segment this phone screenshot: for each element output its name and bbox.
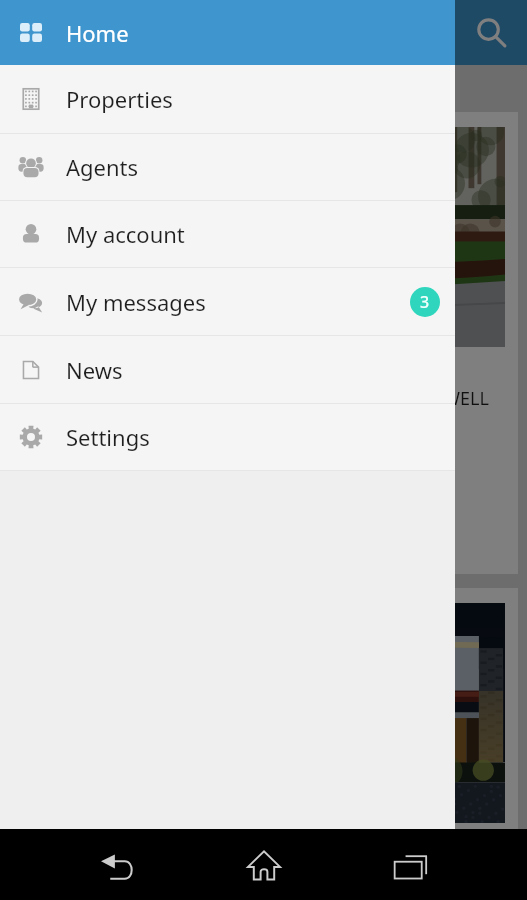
- staticText: My account: [66, 219, 185, 249]
- button[interactable]: LUXURY 5 BEDROOM DETACHED HOME IN SOUTHW…: [9, 112, 518, 574]
- button[interactable]: Back: [87, 837, 147, 897]
- button[interactable]: Recent apps: [380, 837, 440, 897]
- button[interactable]: Properties: [0, 65, 455, 133]
- button[interactable]: MODERN 4 BEDROOM VILLA WITH POOL, RIVERS…: [9, 588, 518, 900]
- button[interactable]: Search: [470, 11, 514, 55]
- button[interactable]: Home: [0, 0, 455, 65]
- staticText: LUXURY 5 BEDROOM DETACHED HOME IN SOUTHW…: [22, 386, 489, 411]
- staticText: 3: [420, 291, 430, 313]
- staticText: Settings: [66, 422, 150, 452]
- staticText: Properties: [66, 84, 173, 114]
- button[interactable]: Home: [234, 835, 294, 895]
- button[interactable]: My account: [0, 201, 455, 267]
- staticText: MODERN 4 BEDROOM VILLA WITH POOL, RIVERS…: [22, 862, 465, 887]
- staticText: News: [66, 355, 123, 385]
- staticText: Home: [66, 18, 129, 48]
- button[interactable]: Agents: [0, 134, 455, 200]
- staticText: My messages: [66, 287, 206, 317]
- button[interactable]: My messages: [0, 268, 455, 335]
- staticText: Agents: [66, 152, 139, 182]
- button[interactable]: Settings: [0, 404, 455, 470]
- button[interactable]: News: [0, 336, 455, 403]
